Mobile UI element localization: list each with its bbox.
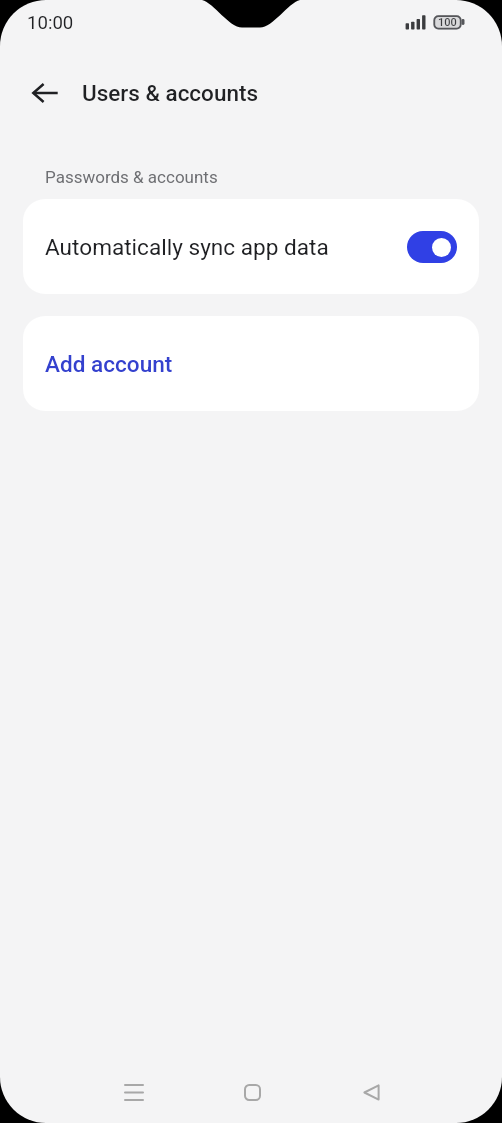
staticText: Users & accounts	[82, 80, 258, 106]
button[interactable]: Recent apps	[74, 1061, 193, 1123]
button[interactable]: Home	[193, 1061, 312, 1123]
staticText: Automatically sync app data	[45, 234, 329, 260]
staticText: 10:00	[27, 12, 74, 34]
staticText: Add account	[45, 351, 173, 377]
button[interactable]: Add account	[23, 316, 479, 411]
button[interactable]: Automatically sync app data	[23, 199, 479, 294]
button[interactable]: Back	[20, 68, 70, 118]
staticText: Passwords & accounts	[45, 167, 218, 187]
button[interactable]: Back	[312, 1061, 431, 1123]
button[interactable]: Automatically sync app data	[407, 231, 457, 263]
